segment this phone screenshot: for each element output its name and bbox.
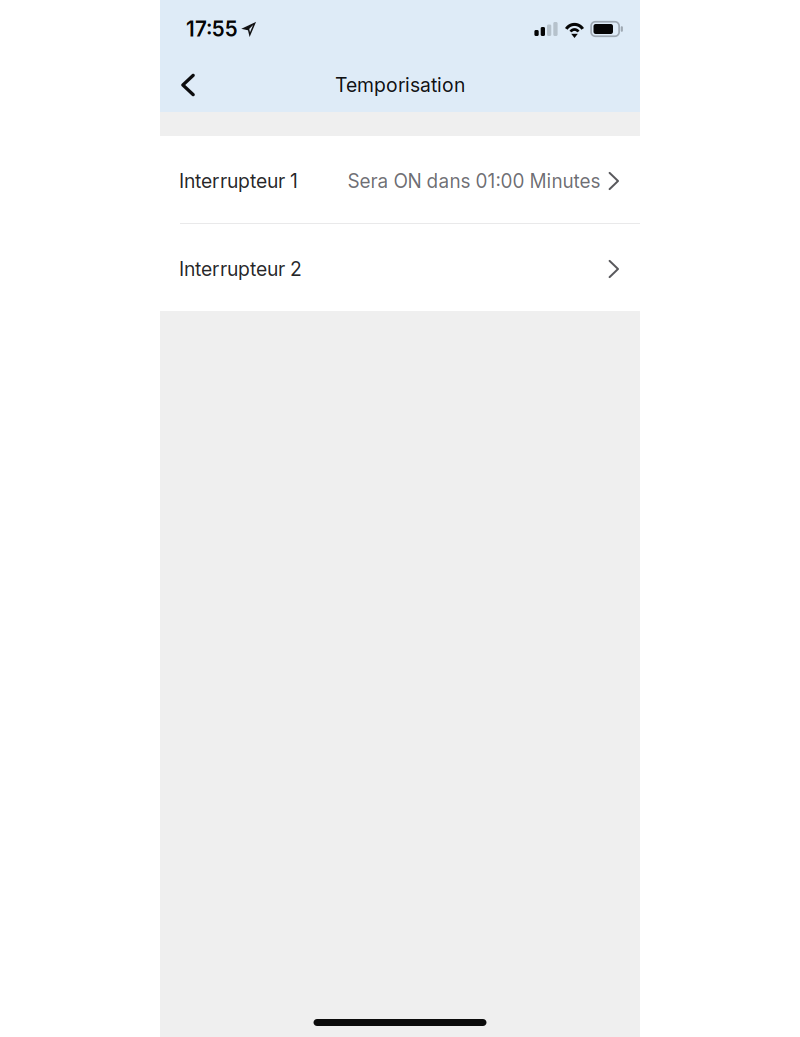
button[interactable]: Back	[167, 58, 209, 112]
staticText: Sera ON dans 01:00 Minutes	[348, 169, 601, 192]
staticText: 17:55	[186, 16, 238, 41]
staticText: Temporisation	[335, 73, 465, 97]
button[interactable]: Interrupteur 1	[160, 136, 640, 223]
button[interactable]: Interrupteur 2	[160, 224, 640, 311]
staticText: Interrupteur 2	[179, 257, 302, 281]
staticText: Interrupteur 1	[179, 169, 298, 193]
